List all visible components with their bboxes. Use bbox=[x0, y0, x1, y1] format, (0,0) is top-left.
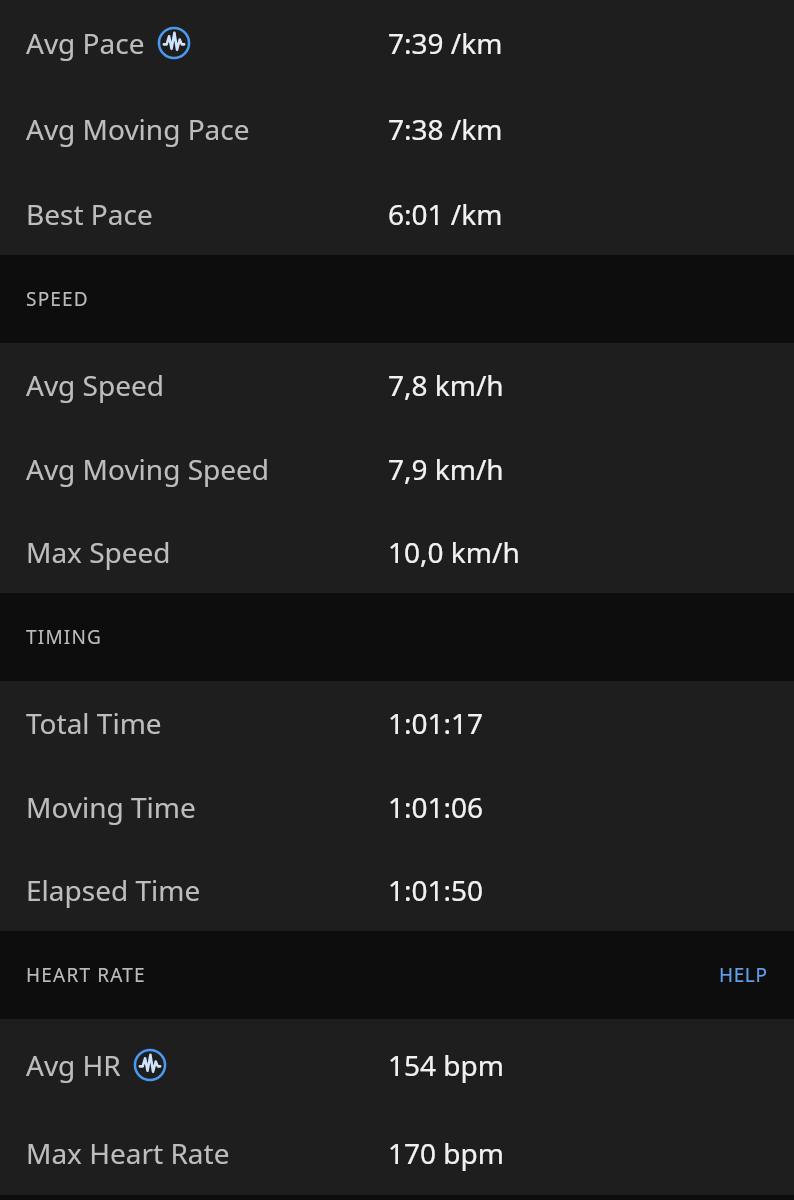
button[interactable]: Max Heart Rate bbox=[0, 1110, 794, 1195]
staticText: 7,8 km/h bbox=[388, 366, 504, 404]
staticText: Best Pace bbox=[26, 195, 153, 233]
button[interactable]: Max Speed bbox=[0, 510, 794, 593]
other: Heart rate data source bbox=[133, 1048, 167, 1082]
staticText: 7,9 km/h bbox=[388, 450, 504, 488]
button[interactable]: Avg Moving Pace bbox=[0, 85, 794, 172]
staticText: Max Heart Rate bbox=[26, 1134, 230, 1172]
staticText: Total Time bbox=[26, 704, 162, 742]
staticText: Avg Pace bbox=[26, 24, 145, 62]
staticText: HEART RATE bbox=[26, 962, 146, 988]
staticText: 6:01 /km bbox=[388, 195, 503, 233]
staticText: Avg Moving Speed bbox=[26, 450, 270, 488]
button[interactable]: Avg Moving Speed bbox=[0, 427, 794, 510]
staticText: Avg Speed bbox=[26, 366, 165, 404]
staticText: SPEED bbox=[26, 286, 89, 312]
button[interactable]: Avg Pace bbox=[0, 0, 794, 85]
staticText: TIMING bbox=[26, 624, 103, 650]
staticText: 1:01:17 bbox=[388, 704, 484, 742]
staticText: 170 bpm bbox=[388, 1134, 504, 1172]
staticText: Elapsed Time bbox=[26, 871, 201, 909]
staticText: 1:01:50 bbox=[388, 871, 484, 909]
staticText: Avg HR bbox=[26, 1046, 121, 1084]
button[interactable]: Avg HR bbox=[0, 1019, 794, 1110]
staticText: 7:38 /km bbox=[388, 110, 503, 148]
staticText: Avg Moving Pace bbox=[26, 110, 250, 148]
button[interactable]: Elapsed Time bbox=[0, 848, 794, 931]
button[interactable]: Moving Time bbox=[0, 765, 794, 848]
staticText: Max Speed bbox=[26, 533, 171, 571]
staticText: 10,0 km/h bbox=[388, 533, 520, 571]
staticText: HELP bbox=[719, 962, 768, 988]
button[interactable]: Avg Speed bbox=[0, 343, 794, 427]
staticText: 1:01:06 bbox=[388, 788, 484, 826]
staticText: 154 bpm bbox=[388, 1046, 504, 1084]
button[interactable]: Best Pace bbox=[0, 172, 794, 255]
button[interactable]: HELP bbox=[693, 954, 794, 996]
button[interactable]: Total Time bbox=[0, 681, 794, 765]
staticText: 7:39 /km bbox=[388, 24, 503, 62]
staticText: Moving Time bbox=[26, 788, 196, 826]
other: Heart rate data source bbox=[157, 26, 191, 60]
